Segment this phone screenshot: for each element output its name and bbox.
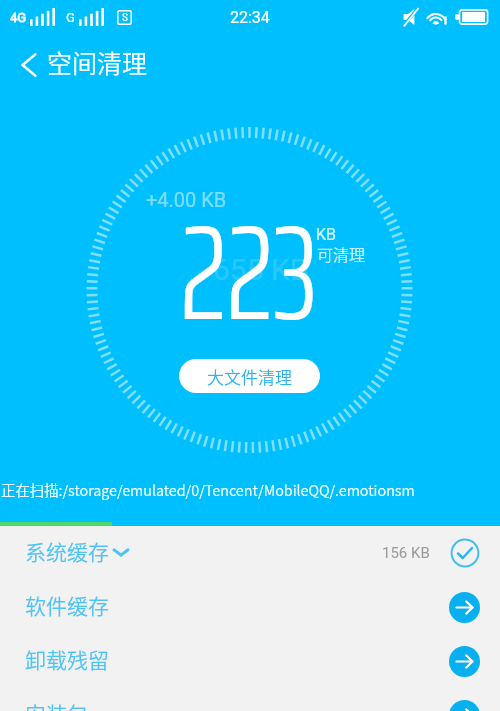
staticText: KB — [316, 225, 337, 244]
staticText: G — [66, 10, 75, 25]
button[interactable]: 系统缓存 — [0, 526, 500, 580]
button[interactable]: Back — [13, 45, 45, 85]
staticText: S — [122, 12, 128, 24]
staticText: 223 — [180, 169, 318, 377]
button[interactable]: Open — [449, 700, 480, 711]
staticText: 空间清理 — [47, 44, 148, 80]
button[interactable]: 软件缓存 — [0, 580, 500, 634]
button[interactable]: 大文件清理 — [179, 359, 320, 393]
staticText: 安装包 — [25, 698, 88, 711]
button[interactable]: Open — [449, 592, 480, 623]
button[interactable]: Open — [449, 646, 480, 677]
button[interactable]: 安装包 — [0, 688, 500, 711]
staticText: 655 KB — [213, 252, 309, 287]
staticText: 可清理 — [317, 242, 366, 265]
staticText: 22:34 — [230, 8, 270, 27]
staticText: 卸载残留 — [25, 644, 109, 674]
staticText: 正在扫描:/storage/emulated/0/Tencent/MobileQ… — [1, 479, 415, 500]
button[interactable]: Selected — [450, 538, 480, 568]
staticText: 软件缓存 — [25, 590, 109, 620]
staticText: +4.00 KB — [146, 188, 227, 211]
staticText: 系统缓存 — [25, 536, 109, 566]
staticText: 大文件清理 — [207, 364, 292, 389]
button[interactable]: 卸载残留 — [0, 634, 500, 688]
staticText: 4G — [10, 10, 27, 25]
staticText: 156 KB — [382, 544, 430, 562]
